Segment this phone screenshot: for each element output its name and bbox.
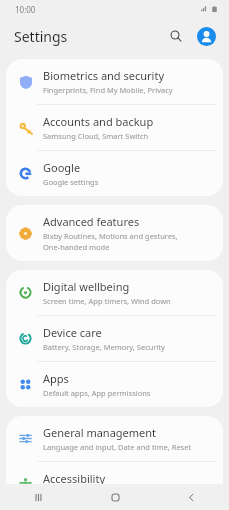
button[interactable]: Biometrics and security	[6, 59, 223, 104]
staticText: Fingerprints, Find My Mobile, Privacy	[43, 85, 173, 95]
staticText: Default apps, App permissions	[43, 388, 151, 398]
staticText: One-handed mode	[43, 242, 110, 252]
button[interactable]: Digital wellbeing	[6, 270, 223, 315]
staticText: Screen time, App timers, Wind down	[43, 296, 171, 306]
staticText: Battery, Storage, Memory, Security	[43, 342, 165, 352]
staticText: 10:00	[15, 4, 36, 15]
staticText: Digital wellbeing	[43, 279, 130, 294]
button[interactable]: Accessibility	[6, 462, 223, 507]
button[interactable]: Search	[163, 23, 189, 49]
button[interactable]: Back	[153, 484, 229, 510]
button[interactable]: Device care	[6, 316, 223, 361]
staticText: Samsung Cloud, Smart Switch	[43, 131, 149, 141]
staticText: Google	[43, 160, 81, 175]
staticText: Accounts and backup	[43, 114, 154, 129]
button[interactable]: Account	[193, 23, 219, 49]
staticText: Settings	[14, 27, 68, 46]
button[interactable]: General management	[6, 416, 223, 461]
button[interactable]: Google	[6, 151, 223, 196]
button[interactable]: Apps	[6, 362, 223, 407]
button[interactable]: Recent apps	[0, 484, 77, 510]
staticText: Language and input, Date and time, Reset	[43, 442, 192, 452]
staticText: General management	[43, 425, 157, 440]
button[interactable]: Accounts and backup	[6, 105, 223, 150]
staticText: Biometrics and security	[43, 68, 164, 83]
staticText: Advanced features	[43, 214, 140, 229]
staticText: Bixby Routines, Motions and gestures,	[43, 231, 178, 241]
button[interactable]: Advanced features	[6, 205, 223, 261]
button[interactable]: Home	[77, 484, 153, 510]
staticText: Google settings	[43, 177, 99, 187]
staticText: Voice Assistant, Mono audio, Assistant m…	[43, 488, 200, 498]
staticText: Device care	[43, 325, 102, 340]
staticText: Apps	[43, 371, 69, 386]
staticText: Accessibility	[43, 471, 106, 486]
